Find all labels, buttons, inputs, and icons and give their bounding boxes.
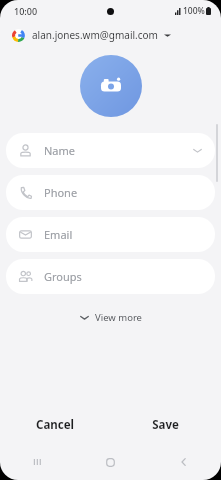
button[interactable]: Groups: [6, 259, 215, 294]
button[interactable]: Recent apps: [0, 448, 73, 476]
staticText: alan.jones.wm@gmail.com: [32, 28, 158, 42]
staticText: Groups: [44, 269, 82, 284]
button[interactable]: Cancel: [0, 402, 110, 448]
button[interactable]: Save: [110, 402, 221, 448]
button[interactable]: Phone: [6, 175, 215, 210]
button[interactable]: alan.jones.wm@gmail.com: [0, 22, 221, 48]
button[interactable]: Name: [6, 133, 215, 168]
button[interactable]: Email: [6, 217, 215, 252]
staticText: 100%: [183, 5, 205, 17]
button[interactable]: Add contact photo: [80, 55, 142, 117]
staticText: 10:00: [14, 5, 38, 17]
button[interactable]: Back: [147, 448, 221, 476]
staticText: View more: [95, 311, 142, 324]
button[interactable]: View more: [70, 307, 152, 328]
staticText: Email: [44, 227, 73, 242]
staticText: Save: [152, 417, 179, 433]
staticText: Name: [44, 143, 76, 158]
staticText: Cancel: [36, 417, 74, 433]
button[interactable]: Home: [73, 448, 147, 476]
staticText: Phone: [44, 185, 78, 200]
